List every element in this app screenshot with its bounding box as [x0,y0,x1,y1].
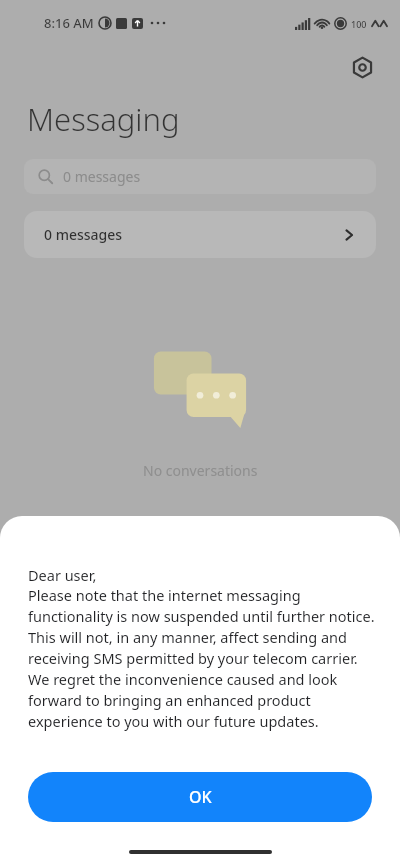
staticText: 8:16 AM [44,14,94,32]
button[interactable]: Settings [348,53,376,81]
staticText: OK [189,786,212,808]
staticText: Dear user, Please note that the internet… [28,565,378,732]
staticText: 0 messages [44,225,123,244]
staticText: No conversations [143,461,258,480]
staticText: 100 [351,18,367,30]
button[interactable]: 0 messages [24,211,376,258]
staticText: Messaging [27,98,180,140]
staticText: 0 messages [63,167,141,186]
button[interactable]: 0 messages [24,159,376,194]
button[interactable]: OK [28,772,372,822]
